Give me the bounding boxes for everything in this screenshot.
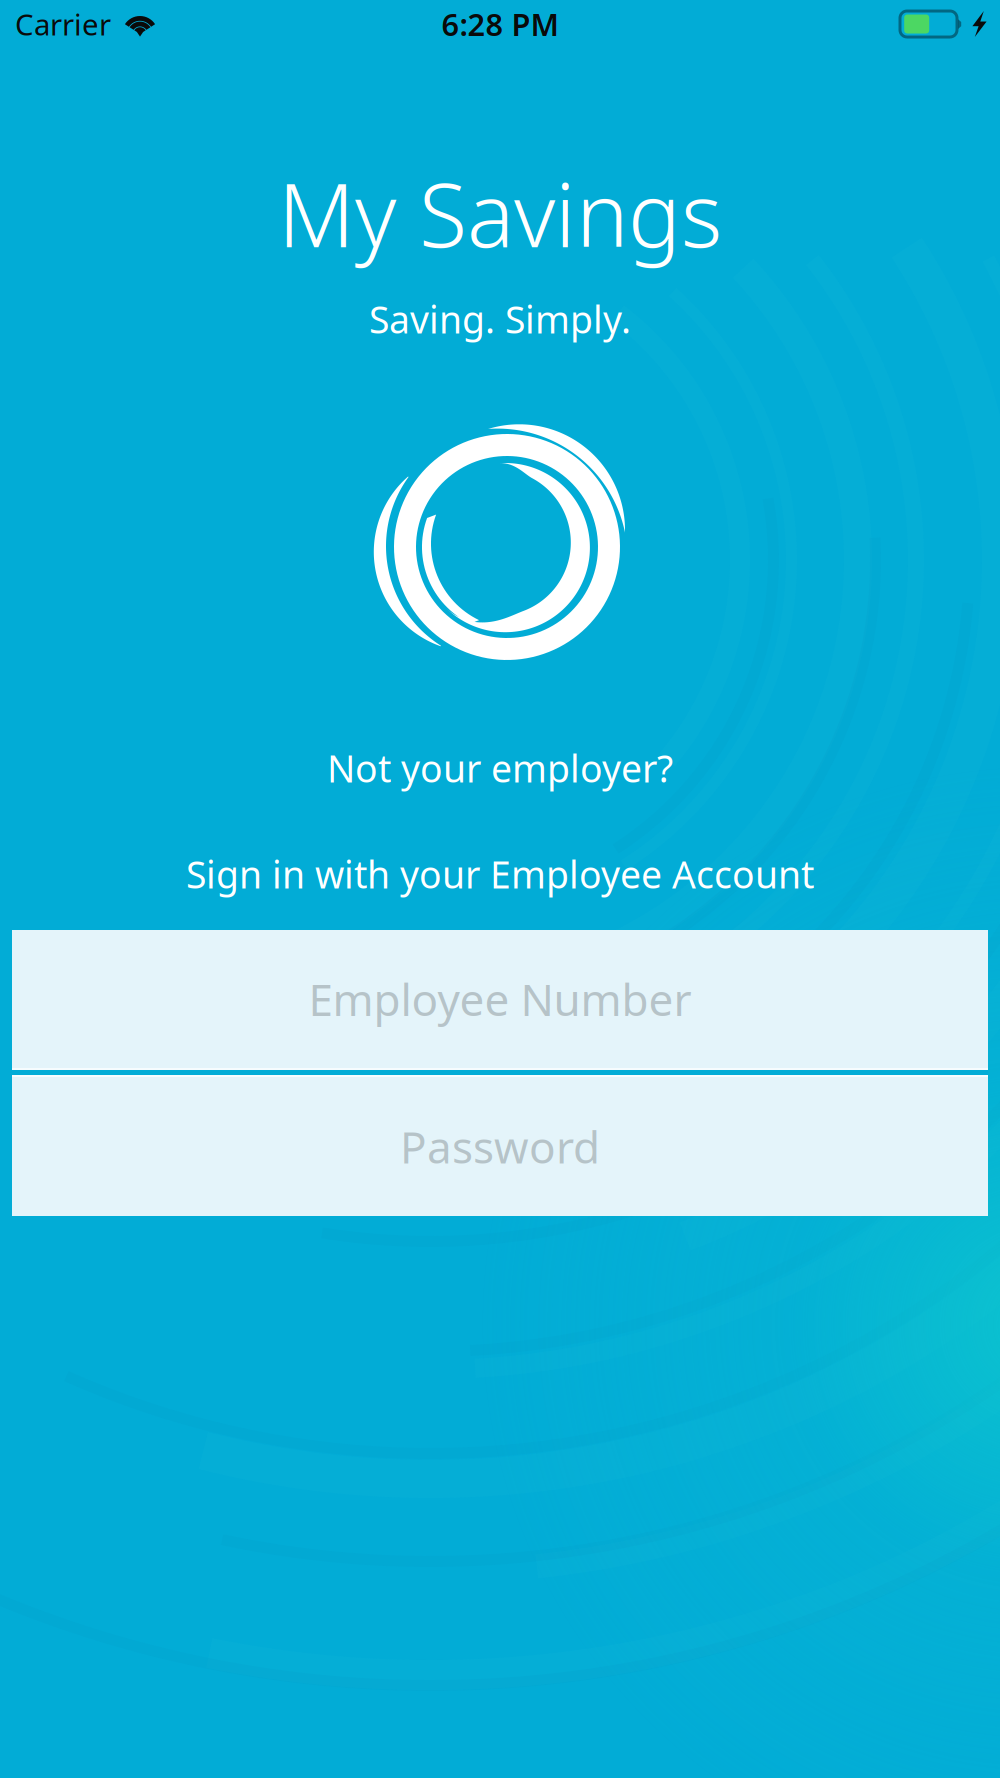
staticText: Not your employer?	[327, 743, 673, 793]
staticText: Sign in with your Employee Account	[186, 849, 814, 899]
staticText: My Savings	[278, 155, 722, 271]
staticText: Password	[400, 1117, 600, 1176]
staticText: Employee Number	[308, 970, 691, 1028]
button[interactable]: Not your employer?	[283, 729, 717, 807]
staticText: Carrier	[15, 4, 111, 43]
staticText: 6:28 PM	[441, 4, 558, 44]
button[interactable]: Password	[12, 1077, 988, 1216]
staticText: Saving. Simply.	[369, 294, 631, 344]
button[interactable]: Employee Number	[12, 930, 988, 1068]
